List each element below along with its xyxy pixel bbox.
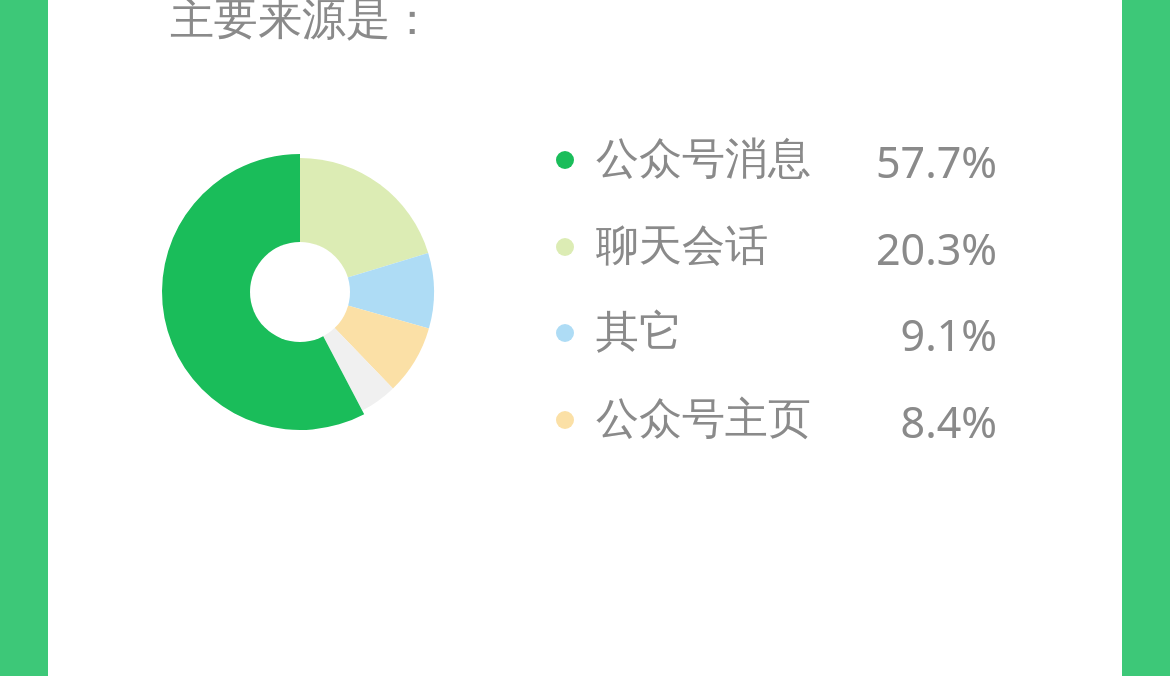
staticText: 公众号主页 <box>596 392 811 446</box>
button[interactable]: 公众号消息 <box>548 126 1010 194</box>
button[interactable]: 公众号主页 <box>548 386 1010 454</box>
staticText: 9.1% <box>797 305 997 361</box>
button[interactable]: 其它 <box>548 299 1010 367</box>
button[interactable]: 聊天会话 <box>548 213 1010 281</box>
button[interactable]: Source distribution donut chart <box>152 144 448 440</box>
staticText: 57.7% <box>797 132 997 188</box>
staticText: 20.3% <box>797 219 997 275</box>
staticText: 公众号消息 <box>596 132 811 186</box>
button[interactable]: 主要来源是： <box>170 0 434 47</box>
staticText: 8.4% <box>797 392 997 448</box>
staticText: 主要来源是： <box>170 0 434 47</box>
staticText: 聊天会话 <box>596 219 768 273</box>
staticText: 其它 <box>596 305 682 359</box>
